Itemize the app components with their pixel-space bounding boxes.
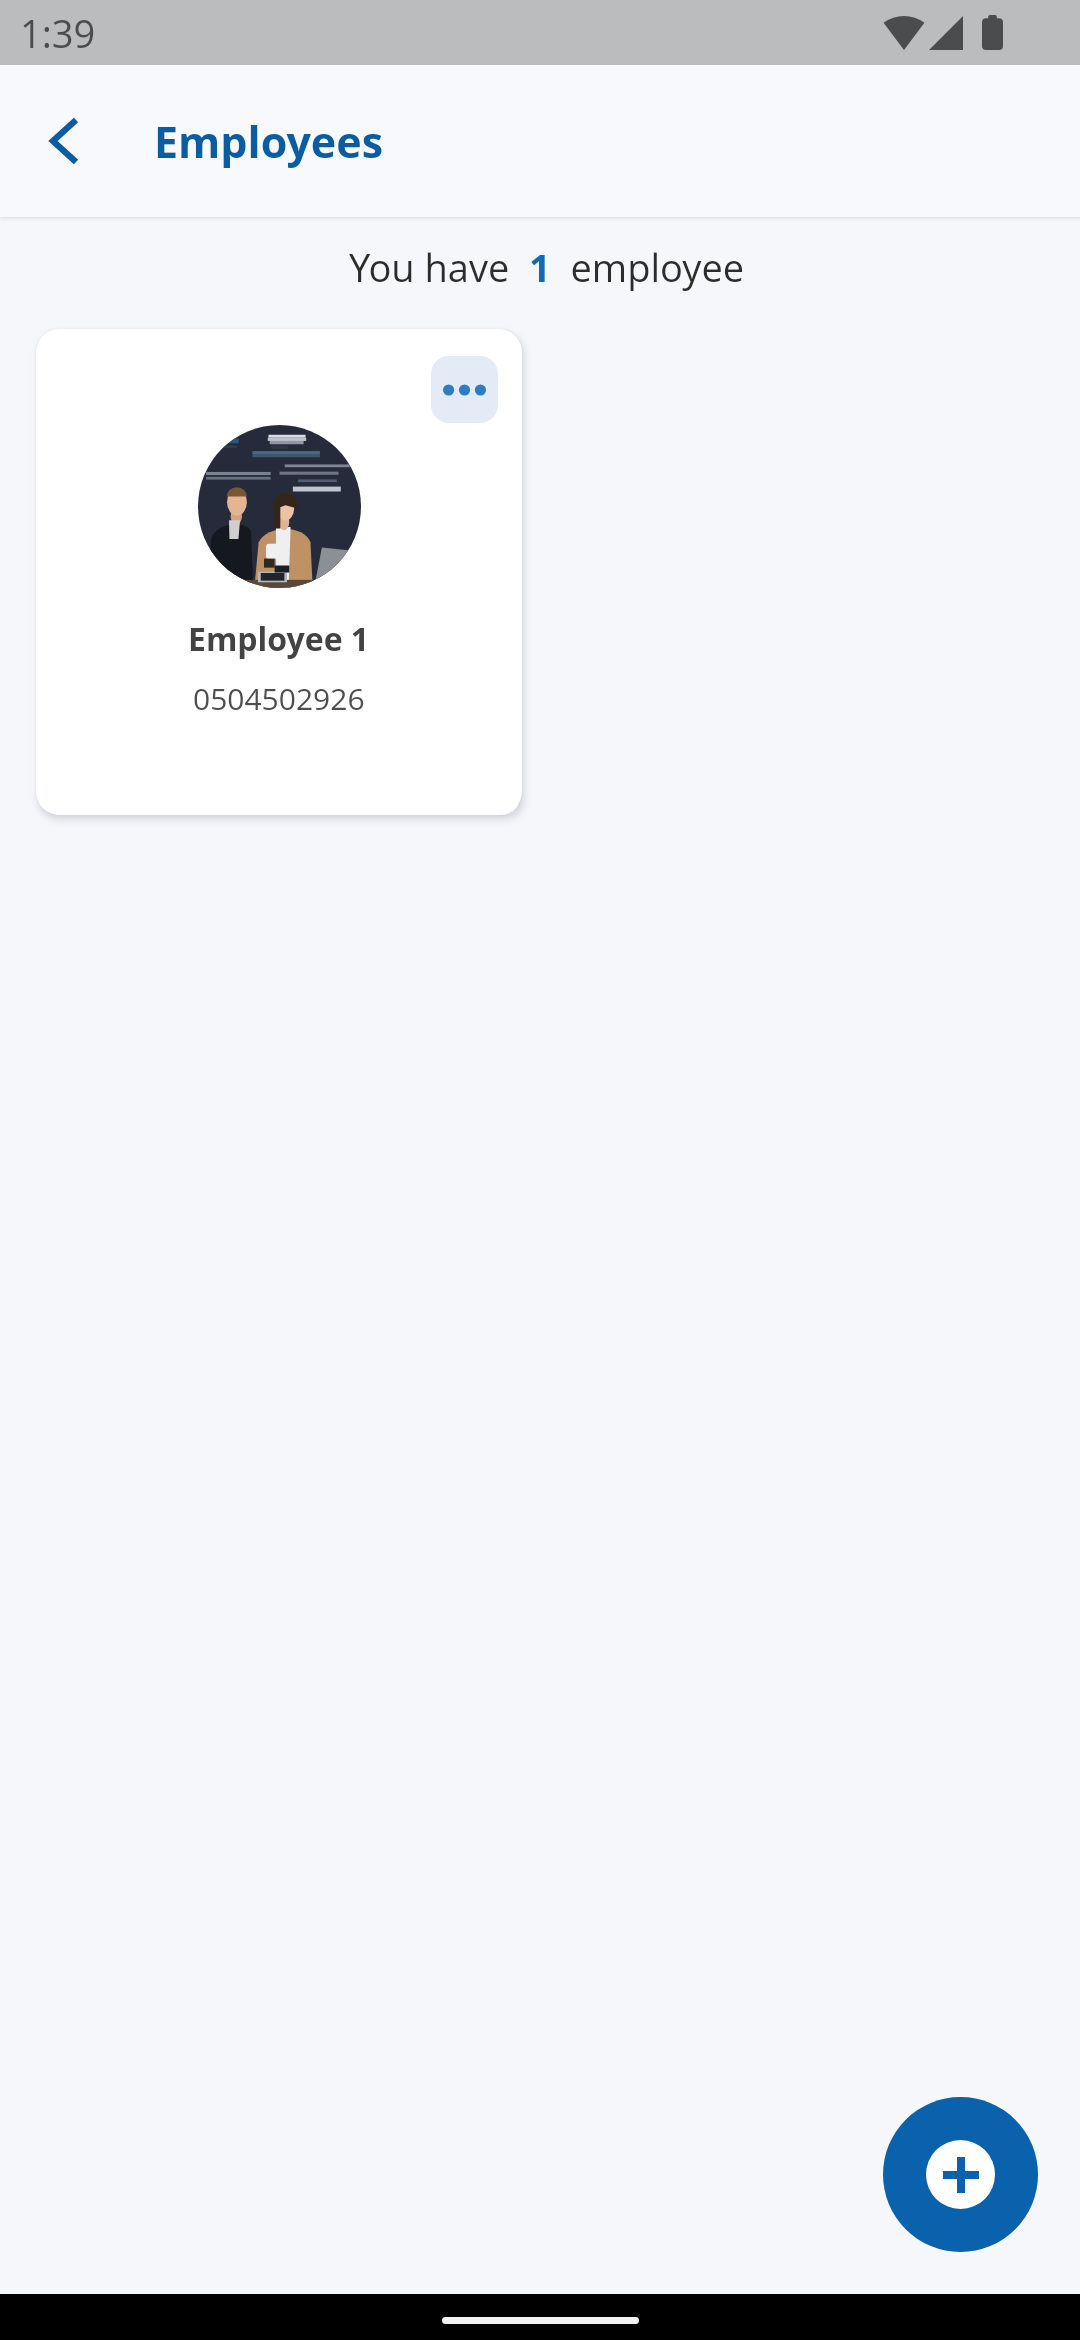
staticText: Employees	[154, 112, 384, 171]
staticText: Employee 1	[188, 617, 370, 661]
staticText: 0504502926	[193, 678, 365, 719]
button[interactable]: Back	[16, 93, 112, 189]
button[interactable]: More options	[431, 356, 498, 423]
button[interactable]: More options	[36, 329, 522, 815]
staticText: 1:39	[20, 7, 96, 59]
button[interactable]: Add employee	[883, 2097, 1038, 2252]
staticText: You have 1 employee	[349, 241, 745, 293]
